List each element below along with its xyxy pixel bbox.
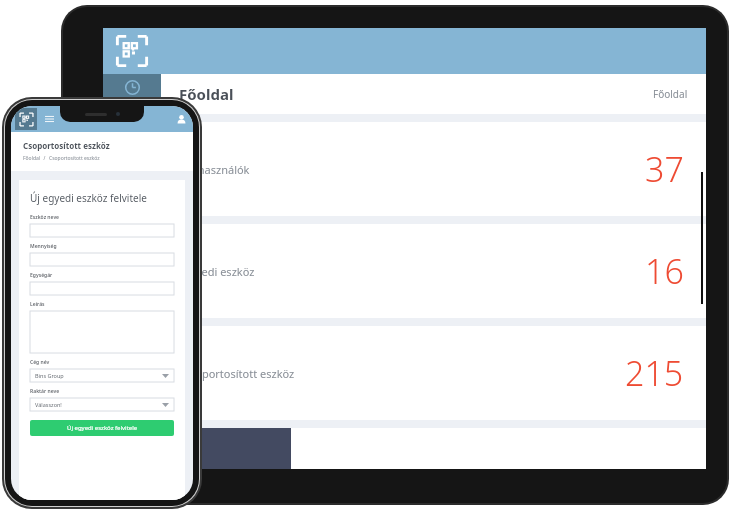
staticText: 37 [645, 146, 684, 192]
button[interactable]: Új egyedi eszköz felvitele [30, 420, 174, 436]
staticText: Csoportosított eszköz [23, 140, 110, 151]
staticText: Új egyedi eszköz felvitele [30, 191, 147, 205]
button[interactable]: Egyedi eszköz [161, 224, 706, 318]
button[interactable] [30, 311, 174, 353]
button[interactable] [30, 253, 174, 266]
button[interactable] [30, 224, 174, 237]
staticText: Egységár [30, 272, 53, 279]
staticText: Válasszon! [35, 401, 62, 408]
staticText: Raktár neve [30, 388, 60, 395]
staticText: Főoldal [179, 84, 234, 104]
button[interactable]: Bins Group [30, 369, 174, 382]
staticText: Egyedi eszköz [183, 264, 255, 279]
staticText: Felhasználók [183, 162, 250, 177]
button[interactable]: Főoldal [653, 87, 688, 101]
button[interactable]: Logo [103, 28, 161, 74]
staticText: 16 [645, 248, 684, 294]
button[interactable]: Logo [15, 108, 37, 130]
staticText: Csoportosított eszköz [49, 155, 100, 162]
button[interactable]: Válasszon! [30, 398, 174, 411]
staticText: Új egyedi eszköz felvitele [67, 424, 138, 432]
staticText: / [41, 155, 49, 162]
staticText: Mennyiség [30, 243, 57, 250]
button[interactable]: Menu [43, 114, 56, 124]
staticText: Csoportosított eszköz [183, 366, 295, 381]
button[interactable]: Account [174, 112, 189, 127]
staticText: Cég név [30, 359, 50, 366]
button[interactable]: History [103, 74, 161, 114]
button[interactable]: Főoldal [23, 155, 41, 162]
button[interactable] [161, 428, 291, 469]
button[interactable] [30, 282, 174, 295]
button[interactable]: Felhasználók [161, 122, 706, 216]
staticText: 215 [625, 350, 684, 396]
staticText: Eszköz neve [30, 214, 60, 221]
button[interactable]: Csoportosított eszköz [161, 326, 706, 420]
staticText: Bins Group [35, 372, 64, 379]
staticText: Leírás [30, 301, 45, 308]
